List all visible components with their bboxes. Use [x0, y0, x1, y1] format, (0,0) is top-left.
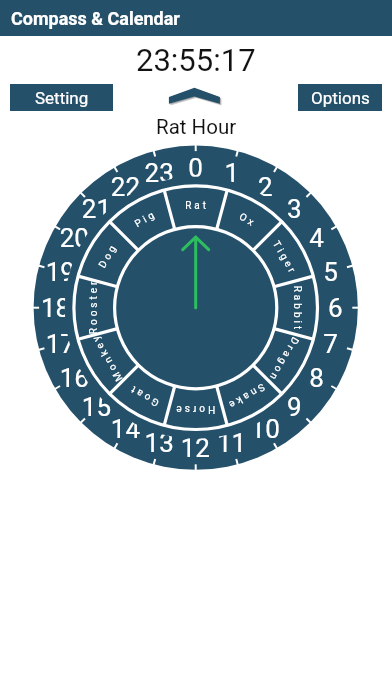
staticText: 23:55:17: [136, 42, 256, 74]
other: Current hour marker: [164, 84, 226, 108]
staticText: Options: [311, 88, 370, 108]
button[interactable]: Setting: [10, 84, 113, 111]
staticText: Setting: [35, 88, 89, 108]
button[interactable]: Options: [298, 84, 382, 111]
staticText: Rat Hour: [156, 115, 237, 139]
staticText: Compass & Calendar: [11, 8, 180, 29]
